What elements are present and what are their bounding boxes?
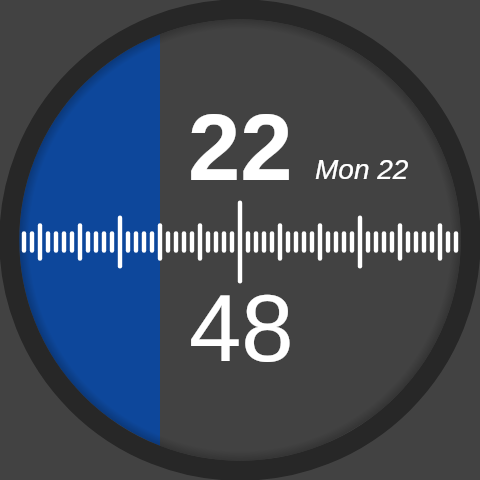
button[interactable]: Mon 22 xyxy=(282,139,442,199)
button[interactable]: Minute 48 xyxy=(121,268,361,388)
staticText: Mon 22 xyxy=(315,154,409,185)
staticText: 48 xyxy=(189,276,294,381)
button[interactable]: Ruler watch face showing 22:48, Mon 22 xyxy=(0,0,480,480)
staticText: 22 xyxy=(188,95,293,200)
button[interactable]: Hour 22 xyxy=(120,87,360,207)
